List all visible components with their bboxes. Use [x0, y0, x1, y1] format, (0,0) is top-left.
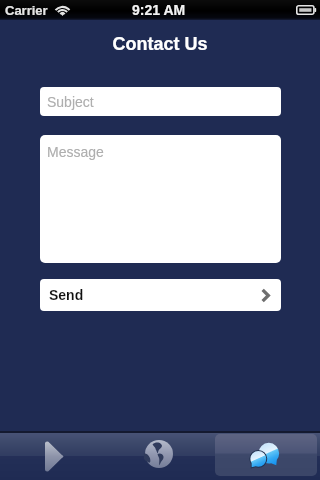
button[interactable]: Videos — [2, 434, 103, 476]
staticText: Contact Us — [112, 34, 208, 54]
other: Send — [261, 289, 270, 302]
staticText: Carrier — [5, 3, 48, 18]
button[interactable]: Message — [40, 135, 281, 263]
button[interactable]: Subject — [40, 87, 281, 116]
staticText: Message — [47, 144, 104, 160]
staticText: Subject — [47, 94, 94, 110]
staticText: Send — [49, 287, 84, 303]
staticText: 9:21 AM — [132, 2, 186, 18]
button[interactable]: Web — [108, 434, 210, 476]
button[interactable]: Send — [40, 279, 281, 311]
other: Battery — [296, 5, 316, 15]
button[interactable]: Contact Us — [215, 434, 317, 476]
other: Wi-Fi — [55, 5, 70, 16]
